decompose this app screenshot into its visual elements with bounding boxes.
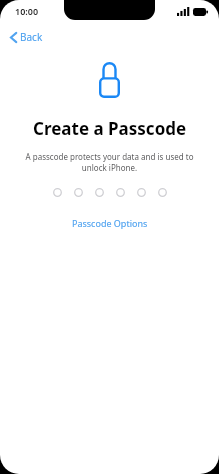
staticText: 10:00 [15,5,39,17]
staticText: Passcode Options [72,217,148,229]
staticText: Back [20,30,43,44]
staticText: A passcode protects your data and is use… [21,151,198,173]
staticText: Create a Passcode [33,117,187,140]
button[interactable]: Back [6,26,47,48]
button[interactable]: Passcode Options [66,214,154,232]
